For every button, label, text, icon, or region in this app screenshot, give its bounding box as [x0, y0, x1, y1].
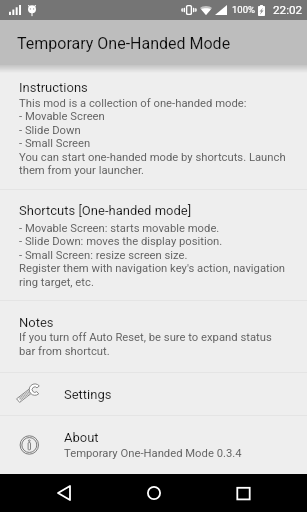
- staticText: Shortcuts [One-handed mode]: [19, 203, 192, 218]
- staticText: 100%: [232, 4, 255, 15]
- staticText: If you turn off Auto Reset, be sure to e…: [19, 331, 272, 344]
- staticText: You can start one-handed mode by shortcu…: [19, 151, 286, 164]
- staticText: Register them with navigation key's acti…: [19, 262, 286, 275]
- staticText: - Slide Down: moves the display position…: [19, 235, 223, 248]
- staticText: bar from shortcut.: [19, 345, 110, 358]
- button[interactable]: Recent apps: [219, 474, 267, 512]
- staticText: - Movable Screen: starts movable mode.: [19, 222, 220, 235]
- button[interactable]: Home: [130, 474, 178, 512]
- staticText: - Small Screen: resize screen size.: [19, 249, 188, 262]
- button[interactable]: About: [0, 416, 307, 474]
- staticText: Instructions: [19, 80, 88, 95]
- staticText: - Movable Screen: [19, 110, 105, 123]
- button[interactable]: Back: [40, 474, 88, 512]
- staticText: About: [64, 430, 99, 445]
- staticText: Settings: [64, 387, 112, 402]
- button[interactable]: Settings: [0, 373, 307, 415]
- staticText: Temporary One-Handed Mode: [17, 34, 231, 53]
- staticText: them from your launcher.: [19, 164, 145, 177]
- staticText: This mod is a collection of one-handed m…: [19, 97, 247, 110]
- staticText: - Small Screen: [19, 137, 91, 150]
- staticText: 22:02: [273, 3, 303, 17]
- staticText: ring target, etc.: [19, 276, 94, 289]
- staticText: Temporary One-Handed Mode 0.3.4: [64, 447, 242, 460]
- staticText: Notes: [19, 315, 54, 330]
- staticText: - Slide Down: [19, 124, 81, 137]
